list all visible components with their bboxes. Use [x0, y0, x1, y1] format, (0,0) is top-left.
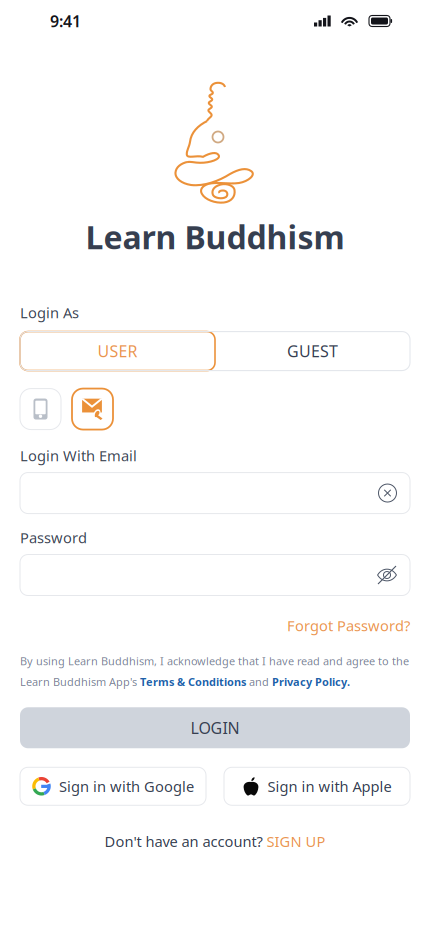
staticText: GUEST [287, 340, 338, 362]
staticText: Sign in with Google [59, 776, 194, 796]
staticText: Password [20, 527, 87, 547]
staticText: Login With Email [20, 446, 137, 466]
staticText: Sign in with Apple [267, 776, 391, 796]
staticText: LOGIN [190, 717, 239, 739]
button[interactable]: GUEST [215, 332, 410, 371]
button[interactable]: LOGIN [20, 707, 410, 748]
staticText: Learn Buddhism [85, 215, 344, 259]
staticText: Terms & Conditions [140, 674, 246, 689]
staticText: and [246, 674, 272, 689]
staticText: USER [97, 340, 137, 362]
button[interactable]: Sign in with Apple [224, 767, 410, 805]
staticText: By using Learn Buddhism, I acknowledge t… [20, 653, 409, 668]
button[interactable]: Show password [377, 565, 397, 584]
staticText: 9:41 [50, 10, 81, 32]
button[interactable]: USER [20, 332, 215, 371]
staticText: Login As [20, 303, 79, 323]
staticText: Privacy Policy. [272, 674, 350, 689]
staticText: Forgot Password? [287, 615, 410, 635]
button[interactable]: Privacy Policy. [272, 674, 350, 689]
button[interactable]: Terms & Conditions [140, 674, 246, 689]
staticText: Don't have an account? [104, 831, 266, 851]
staticText: Learn Buddhism App's [20, 674, 140, 689]
button[interactable]: Log in with phone number [20, 389, 61, 430]
button[interactable]: Sign in with Google [20, 767, 206, 805]
staticText: SIGN UP [266, 831, 325, 851]
button[interactable]: SIGN UP [266, 831, 325, 851]
button[interactable]: Log in with email [72, 389, 113, 430]
button[interactable]: Clear [378, 483, 397, 502]
button[interactable]: Forgot Password? [287, 615, 410, 635]
